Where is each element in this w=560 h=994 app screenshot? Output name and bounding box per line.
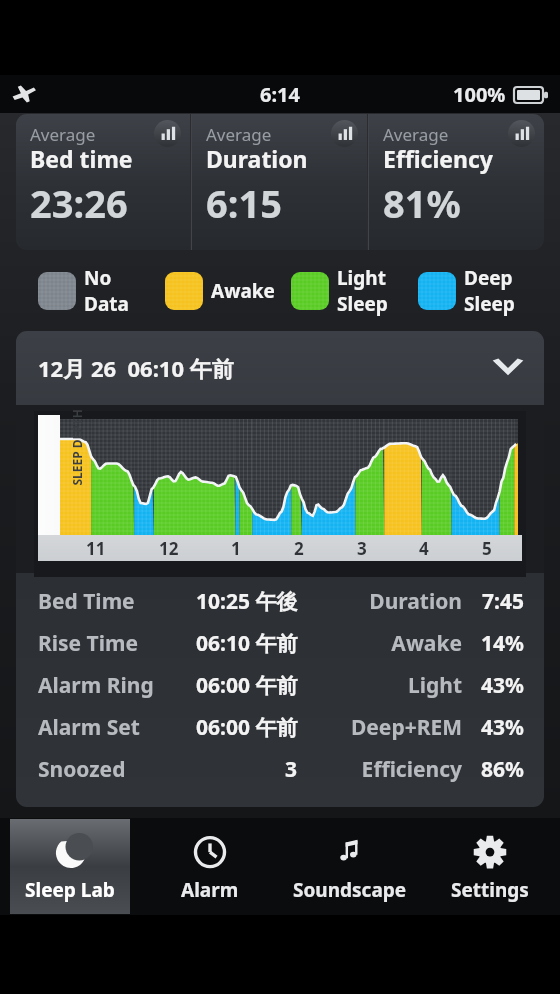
staticText: 43% [462,713,524,742]
staticText: 6:15 [206,177,282,229]
staticText: Bed time [30,143,133,174]
staticText: Sleep [464,291,515,317]
staticText: Deep [464,265,513,291]
staticText: 23:26 [30,177,128,229]
button[interactable]: Rise Time [16,622,544,664]
staticText: SLEEP DEPTH [68,408,84,485]
staticText: Awake [211,278,275,304]
staticText: Deep+REM [312,713,462,742]
button[interactable]: Light [291,263,388,319]
staticText: 12 [159,537,179,560]
staticText: Average [383,123,449,146]
staticText: 86% [462,755,524,784]
staticText: 10:25 午後 [196,587,298,616]
staticText: Rise Time [38,629,139,658]
staticText: 1 [231,537,241,560]
button[interactable]: Average [16,114,190,250]
staticText: Bed Time [38,587,135,616]
staticText: 11 [86,537,106,560]
staticText: Sleep Lab [25,877,115,903]
staticText: Efficiency [383,143,493,174]
staticText: Light [312,671,462,700]
button[interactable]: Show Duration statistics [331,120,358,147]
staticText: 06:00 午前 [196,713,298,742]
staticText: 6:14 [260,81,300,108]
staticText: 12月 26 06:10 午前 [38,353,234,383]
staticText: Duration [206,143,308,174]
staticText: Data [84,291,129,317]
staticText: 4 [419,537,429,560]
staticText: Duration [312,587,462,616]
button[interactable]: Show Bed time statistics [154,120,181,147]
staticText: 3 [357,537,367,560]
other: Airplane mode [11,81,37,107]
button[interactable]: Show Efficiency statistics [508,120,535,147]
button[interactable]: Alarm Set [16,706,544,748]
staticText: Average [30,123,96,146]
staticText: Alarm Set [38,713,140,742]
button[interactable]: Average [369,114,544,250]
staticText: 2 [294,537,304,560]
staticText: Snoozed [38,755,126,784]
button[interactable]: Alarm [140,818,280,915]
staticText: Sleep [337,291,388,317]
button[interactable]: Alarm Ring [16,664,544,706]
staticText: Alarm Ring [38,671,154,700]
staticText: 43% [462,671,524,700]
button[interactable]: Average [192,114,367,250]
staticText: Awake [312,629,462,658]
staticText: Average [206,123,272,146]
other: Expand details [492,358,524,378]
button[interactable]: Sleep Lab [10,819,130,914]
staticText: Alarm [181,877,239,903]
staticText: 14% [462,629,524,658]
staticText: 3 [285,755,298,784]
staticText: No [84,265,112,291]
staticText: Light [337,265,386,291]
staticText: 06:00 午前 [196,671,298,700]
button[interactable]: Soundscape [280,818,420,915]
staticText: 5 [482,537,492,560]
button[interactable]: Deep [418,263,515,319]
staticText: 7:45 [462,587,524,616]
staticText: Settings [451,877,529,903]
staticText: 100% [453,81,506,108]
button[interactable]: 12月 26 06:10 午前 [16,331,544,405]
staticText: 81% [383,177,461,229]
staticText: Soundscape [293,877,407,903]
button[interactable]: Snoozed [16,748,544,790]
button[interactable]: No [38,263,129,319]
button[interactable]: Settings [420,818,560,915]
staticText: Efficiency [312,755,462,784]
button[interactable]: Bed Time [16,580,544,622]
staticText: 06:10 午前 [196,629,298,658]
button[interactable]: Awake [165,263,275,319]
